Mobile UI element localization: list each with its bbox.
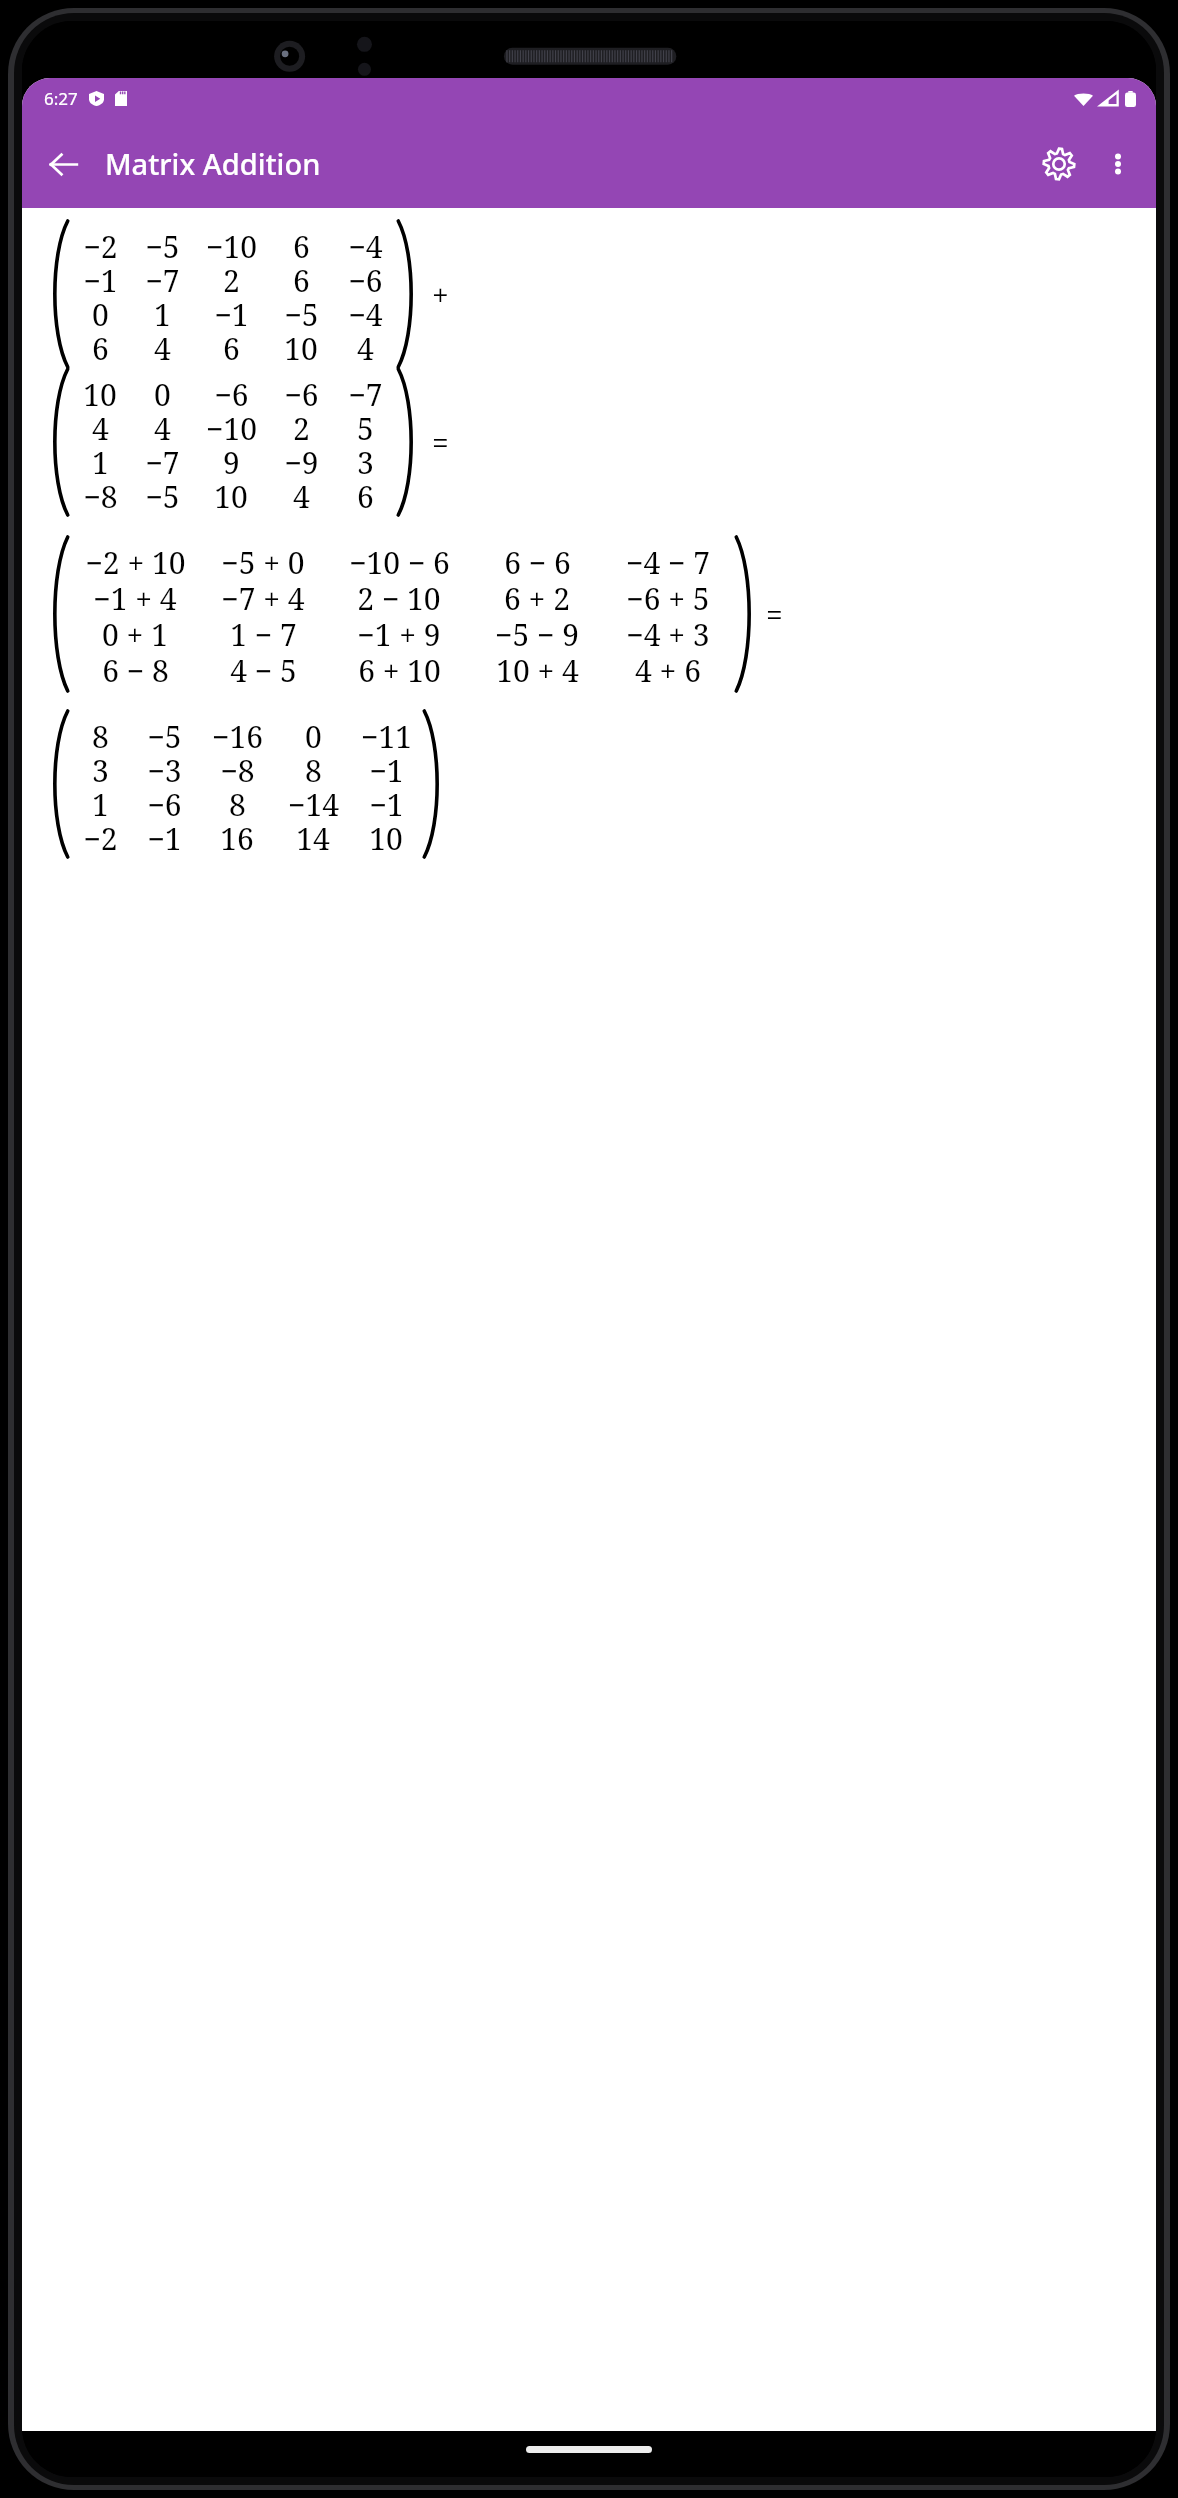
staticText: 10: [284, 328, 318, 362]
staticText: −8: [83, 476, 118, 510]
staticText: 6 − 8: [102, 650, 169, 686]
staticText: −4: [348, 294, 383, 328]
staticText: −1: [369, 784, 404, 818]
staticText: −7 + 4: [221, 578, 305, 614]
button[interactable]: Navigate up: [34, 135, 92, 193]
staticText: 0: [305, 716, 322, 750]
staticText: 6:27: [44, 87, 78, 110]
staticText: 4: [154, 408, 171, 442]
staticText: 8: [229, 784, 246, 818]
staticText: −14: [288, 784, 339, 818]
button[interactable]: Settings: [1028, 133, 1090, 195]
staticText: 9: [223, 442, 240, 476]
staticText: 10: [214, 476, 248, 510]
staticText: 3: [92, 750, 109, 784]
staticText: −5: [145, 226, 180, 260]
staticText: 16: [220, 818, 254, 852]
staticText: −5: [147, 716, 182, 750]
staticText: 2 − 10: [357, 578, 441, 614]
staticText: 3: [357, 442, 374, 476]
staticText: =: [766, 594, 783, 635]
staticText: 2: [223, 260, 240, 294]
staticText: −16: [212, 716, 263, 750]
staticText: 8: [92, 716, 109, 750]
staticText: −1 + 4: [93, 578, 177, 614]
staticText: 4 + 6: [635, 650, 701, 686]
staticText: −4 − 7: [626, 542, 710, 578]
staticText: 1: [154, 294, 171, 328]
staticText: 0: [154, 374, 171, 408]
staticText: 6 + 2: [504, 578, 570, 614]
button[interactable]: Matrix Addition: [105, 144, 321, 183]
staticText: 6 + 10: [358, 650, 441, 686]
staticText: −3: [147, 750, 182, 784]
staticText: −5: [284, 294, 319, 328]
staticText: −10 − 6: [349, 542, 450, 578]
staticText: 1: [92, 784, 109, 818]
staticText: −1: [83, 260, 118, 294]
staticText: −9: [284, 442, 319, 476]
staticText: −6: [284, 374, 319, 408]
staticText: 4 − 5: [230, 650, 297, 686]
staticText: 6: [293, 260, 310, 294]
staticText: −2: [83, 226, 118, 260]
staticText: 4: [154, 328, 171, 362]
staticText: 6: [223, 328, 240, 362]
staticText: −10: [206, 408, 257, 442]
staticText: −2 + 10: [85, 542, 186, 578]
staticText: 6 − 6: [504, 542, 571, 578]
staticText: =: [432, 422, 449, 463]
staticText: −2: [83, 818, 118, 852]
staticText: 6: [357, 476, 374, 510]
staticText: 14: [296, 818, 330, 852]
staticText: 1: [92, 442, 109, 476]
staticText: −4 + 3: [626, 614, 710, 650]
staticText: −10: [206, 226, 257, 260]
staticText: 4: [293, 476, 310, 510]
staticText: 10 + 4: [496, 650, 579, 686]
staticText: −6: [147, 784, 182, 818]
staticText: −5 − 9: [495, 614, 579, 650]
staticText: −11: [361, 716, 412, 750]
staticText: +: [432, 274, 449, 315]
staticText: 0 + 1: [102, 614, 168, 650]
staticText: 2: [293, 408, 310, 442]
staticText: 1 − 7: [230, 614, 297, 650]
staticText: −5: [145, 476, 180, 510]
staticText: 8: [305, 750, 322, 784]
staticText: −4: [348, 226, 383, 260]
staticText: −7: [145, 442, 180, 476]
staticText: 4: [92, 408, 109, 442]
staticText: −7: [348, 374, 383, 408]
staticText: −1 + 9: [357, 614, 441, 650]
button[interactable]: More options: [1090, 136, 1146, 192]
staticText: −1: [214, 294, 249, 328]
staticText: 0: [92, 294, 109, 328]
staticText: 6: [293, 226, 310, 260]
staticText: −6: [214, 374, 249, 408]
staticText: −1: [369, 750, 404, 784]
staticText: −7: [145, 260, 180, 294]
staticText: 4: [357, 328, 374, 362]
staticText: 10: [369, 818, 403, 852]
staticText: −8: [220, 750, 255, 784]
staticText: −5 + 0: [221, 542, 305, 578]
staticText: 6: [92, 328, 109, 362]
staticText: −6: [348, 260, 383, 294]
staticText: −1: [147, 818, 182, 852]
staticText: 5: [357, 408, 374, 442]
staticText: −6 + 5: [626, 578, 710, 614]
staticText: 10: [83, 374, 117, 408]
